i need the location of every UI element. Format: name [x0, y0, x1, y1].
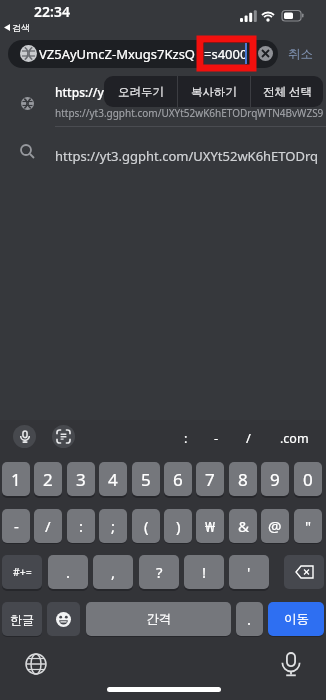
- button[interactable]: /: [34, 509, 62, 543]
- button[interactable]: ': [229, 555, 269, 589]
- button[interactable]: #+=: [2, 555, 42, 589]
- staticText: (: [144, 516, 149, 536]
- button[interactable]: 5: [132, 462, 160, 496]
- staticText: 오려두기: [118, 85, 164, 99]
- staticText: 3: [76, 468, 86, 491]
- staticText: ?: [156, 562, 163, 582]
- button[interactable]: 간격: [86, 602, 231, 636]
- button[interactable]: 4: [99, 462, 127, 496]
- button[interactable]: .: [236, 602, 263, 636]
- button[interactable]: [13, 425, 36, 448]
- staticText: 7: [205, 468, 215, 491]
- button[interactable]: 0: [294, 462, 322, 496]
- button[interactable]: ?: [139, 555, 179, 589]
- button[interactable]: -: [214, 429, 219, 447]
- staticText: 1: [11, 468, 21, 491]
- staticText: 0: [303, 468, 313, 491]
- button[interactable]: ₩: [196, 509, 224, 543]
- staticText: :: [79, 516, 84, 536]
- staticText: /: [45, 516, 51, 536]
- staticText: ₩: [205, 516, 216, 536]
- staticText: ': [247, 562, 251, 582]
- button[interactable]: 3: [67, 462, 95, 496]
- button[interactable]: [8, 40, 278, 68]
- button[interactable]: 한글: [2, 602, 42, 636]
- button[interactable]: 2: [34, 462, 62, 496]
- staticText: 5: [141, 468, 151, 491]
- button[interactable]: :: [184, 429, 188, 447]
- button[interactable]: -: [2, 509, 30, 543]
- button[interactable]: ): [164, 509, 192, 543]
- staticText: 8: [238, 468, 248, 491]
- button[interactable]: ;: [99, 509, 127, 543]
- button[interactable]: !: [184, 555, 224, 589]
- staticText: 9: [270, 468, 280, 491]
- staticText: 2: [43, 468, 53, 491]
- button[interactable]: [279, 652, 303, 678]
- staticText: ;: [111, 516, 116, 536]
- staticText: ): [176, 516, 181, 536]
- staticText: https://yt3.ggpht.com/UXYt52wK6hETODrqWT…: [55, 106, 324, 120]
- staticText: ": [305, 516, 312, 536]
- button[interactable]: .: [48, 555, 88, 589]
- button[interactable]: 복사하기: [178, 76, 250, 107]
- staticText: -: [14, 516, 19, 536]
- button[interactable]: 취소: [288, 46, 313, 62]
- button[interactable]: [52, 425, 75, 448]
- staticText: 전체 선택: [263, 84, 312, 100]
- button[interactable]: 8: [229, 462, 257, 496]
- button[interactable]: ,: [93, 555, 133, 589]
- button[interactable]: (: [132, 509, 160, 543]
- staticText: 이동: [284, 611, 309, 627]
- staticText: 4: [108, 468, 118, 491]
- button[interactable]: ": [294, 509, 322, 543]
- button[interactable]: 6: [164, 462, 192, 496]
- button[interactable]: 오려두기: [104, 76, 177, 107]
- button[interactable]: [25, 653, 47, 675]
- staticText: 6: [173, 468, 183, 491]
- staticText: .: [247, 609, 252, 629]
- button[interactable]: /: [246, 429, 251, 447]
- staticText: 한글: [10, 612, 34, 627]
- button[interactable]: 9: [261, 462, 289, 496]
- staticText: .: [66, 562, 71, 582]
- button[interactable]: 전체 선택: [251, 76, 323, 107]
- button[interactable]: .com: [280, 430, 309, 447]
- staticText: https://yt3.ggpht.com/UXYt52wK6hETODrqW: [55, 84, 314, 100]
- button[interactable]: 1: [2, 462, 30, 496]
- button[interactable]: &: [229, 509, 257, 543]
- button[interactable]: https://yt3.ggpht.com/UXYt52wK6hETODrq: [55, 147, 319, 165]
- staticText: 22:34: [34, 2, 70, 21]
- staticText: @: [268, 516, 282, 536]
- staticText: ,: [111, 562, 116, 582]
- button[interactable]: :: [67, 509, 95, 543]
- button[interactable]: 이동: [268, 602, 324, 636]
- staticText: !: [202, 562, 207, 582]
- staticText: &: [238, 516, 249, 536]
- button[interactable]: @: [261, 509, 289, 543]
- staticText: 복사하기: [191, 85, 237, 99]
- button[interactable]: [47, 602, 80, 636]
- staticText: =s4000: [204, 45, 248, 63]
- staticText: 간격: [146, 611, 171, 627]
- staticText: #+=: [13, 565, 32, 579]
- staticText: VZ5AyUmcZ-Mxugs7KzsQ: [39, 45, 196, 63]
- staticText: 검색: [12, 22, 30, 33]
- button[interactable]: [258, 46, 273, 61]
- button[interactable]: [284, 555, 324, 589]
- button[interactable]: 7: [196, 462, 224, 496]
